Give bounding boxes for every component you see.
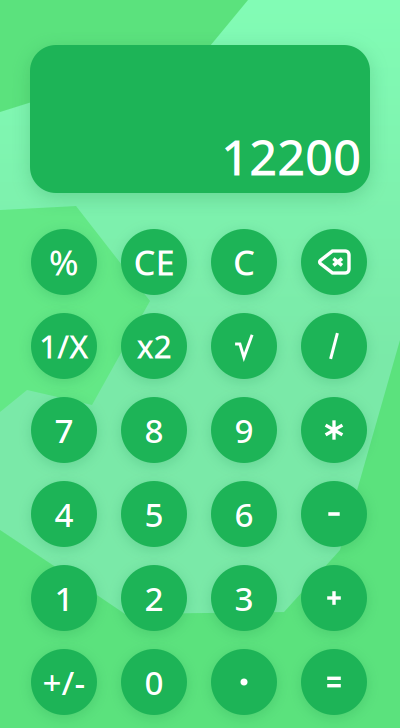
- button[interactable]: Multiply: [301, 397, 367, 463]
- button[interactable]: Clear: [211, 229, 277, 295]
- button[interactable]: Plus minus: [31, 649, 97, 715]
- staticText: 0: [144, 660, 163, 704]
- staticText: 8: [144, 408, 163, 452]
- button[interactable]: Backspace: [301, 229, 367, 295]
- staticText: 7: [54, 408, 73, 452]
- button[interactable]: 1: [31, 565, 97, 631]
- button[interactable]: Percent: [31, 229, 97, 295]
- staticText: 9: [234, 408, 253, 452]
- staticText: 1/X: [39, 325, 89, 367]
- button[interactable]: 0: [121, 649, 187, 715]
- button[interactable]: Decimal point: [211, 649, 277, 715]
- staticText: 12200: [221, 123, 361, 189]
- button[interactable]: 2: [121, 565, 187, 631]
- staticText: C: [233, 239, 255, 285]
- button[interactable]: Clear entry: [121, 229, 187, 295]
- button[interactable]: 5: [121, 481, 187, 547]
- staticText: CE: [133, 239, 174, 285]
- staticText: x2: [136, 325, 171, 367]
- staticText: %: [49, 239, 79, 285]
- staticText: 4: [54, 492, 73, 536]
- button[interactable]: 7: [31, 397, 97, 463]
- button[interactable]: 6: [211, 481, 277, 547]
- button[interactable]: Subtract: [301, 481, 367, 547]
- staticText: 5: [144, 492, 163, 536]
- staticText: +/-: [42, 660, 85, 704]
- button[interactable]: 8: [121, 397, 187, 463]
- button[interactable]: Equals: [301, 649, 367, 715]
- staticText: 2: [144, 576, 163, 620]
- staticText: 1: [54, 576, 73, 620]
- button[interactable]: Divide: [301, 313, 367, 379]
- staticText: 6: [234, 492, 253, 536]
- button[interactable]: Square root: [211, 313, 277, 379]
- staticText: 3: [234, 576, 253, 620]
- button[interactable]: 9: [211, 397, 277, 463]
- button[interactable]: Reciprocal: [31, 313, 97, 379]
- button[interactable]: 3: [211, 565, 277, 631]
- button[interactable]: Add: [301, 565, 367, 631]
- button[interactable]: 4: [31, 481, 97, 547]
- button[interactable]: Square: [121, 313, 187, 379]
